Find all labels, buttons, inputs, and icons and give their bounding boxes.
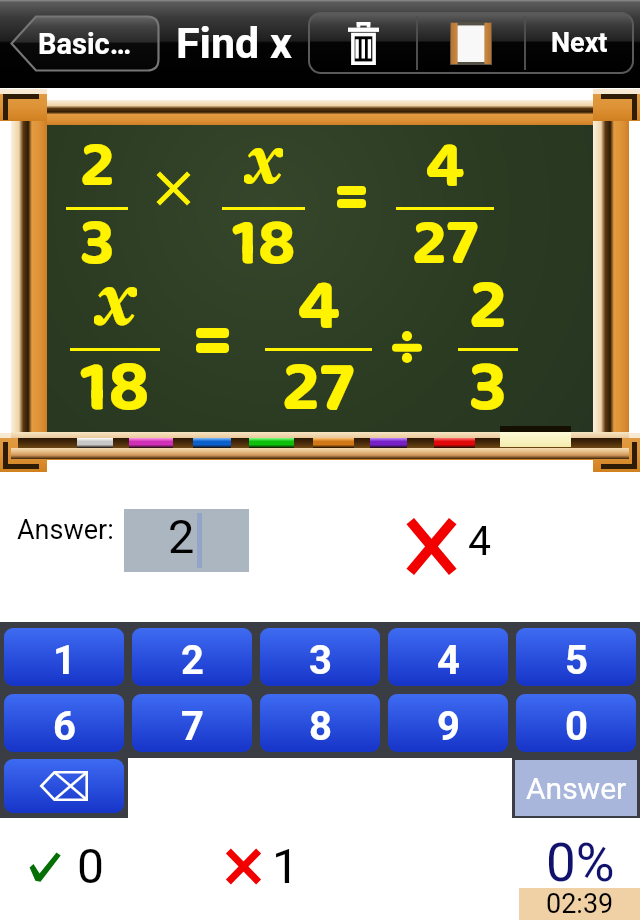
staticText: 18 xyxy=(80,330,150,425)
button[interactable]: Answer xyxy=(515,760,637,816)
staticText: 8 xyxy=(309,703,332,750)
staticText: 2 xyxy=(469,248,507,343)
staticText: Find x xyxy=(176,18,292,68)
button[interactable]: Basic… xyxy=(10,15,160,72)
staticText: 3 xyxy=(309,637,332,684)
button[interactable]: 7 xyxy=(132,694,252,752)
staticText: 5 xyxy=(565,637,588,684)
staticText: 4 xyxy=(425,113,465,202)
staticText: 2 xyxy=(168,509,195,564)
button[interactable]: Next xyxy=(525,13,633,73)
staticText: 27 xyxy=(412,191,479,280)
button[interactable]: 3 xyxy=(260,628,380,686)
staticText: 4 xyxy=(437,637,460,684)
staticText: 7 xyxy=(181,703,204,750)
staticText: 1 xyxy=(53,637,76,684)
button[interactable]: 9 xyxy=(388,694,508,752)
button[interactable]: Delete xyxy=(309,13,417,73)
staticText: Answer: xyxy=(17,514,114,546)
button[interactable]: 4 xyxy=(388,628,508,686)
staticText: 6 xyxy=(53,703,76,750)
button[interactable]: 1 xyxy=(4,628,124,686)
staticText: x xyxy=(94,248,137,343)
staticText: 02:39 xyxy=(546,888,614,920)
staticText: Next xyxy=(551,27,608,59)
staticText: 0% xyxy=(546,832,615,894)
staticText: 9 xyxy=(437,703,460,750)
staticText: 3 xyxy=(80,191,115,280)
button[interactable]: Backspace xyxy=(4,759,124,813)
staticText: 1 xyxy=(272,838,299,894)
staticText: x xyxy=(244,113,283,202)
button[interactable]: 2 xyxy=(124,509,249,572)
button[interactable]: 0 xyxy=(516,694,636,752)
staticText: 2 xyxy=(181,637,204,684)
staticText: 4 xyxy=(297,248,340,343)
staticText: Answer xyxy=(526,771,627,806)
button[interactable]: 5 xyxy=(516,628,636,686)
staticText: 27 xyxy=(282,330,355,425)
staticText: 18 xyxy=(232,191,296,280)
staticText: 4 xyxy=(468,517,492,565)
button[interactable]: 6 xyxy=(4,694,124,752)
button[interactable]: Show board xyxy=(417,13,525,73)
button[interactable]: 8 xyxy=(260,694,380,752)
button[interactable]: 2 xyxy=(132,628,252,686)
staticText: 0 xyxy=(565,703,588,750)
staticText: Basic… xyxy=(38,27,132,61)
staticText: 2 xyxy=(80,113,115,202)
staticText: 3 xyxy=(469,330,507,425)
staticText: 0 xyxy=(77,838,104,894)
